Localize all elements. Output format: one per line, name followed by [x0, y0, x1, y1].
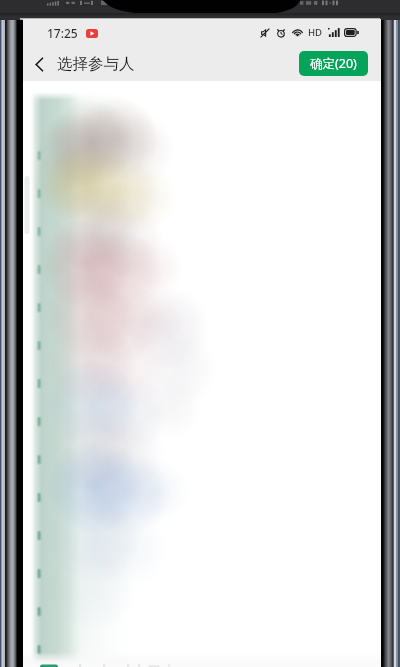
button[interactable] — [23, 593, 381, 631]
button[interactable] — [23, 251, 381, 289]
button[interactable]: 确定(20) — [299, 51, 368, 76]
staticText: HD — [308, 26, 323, 39]
staticText: 17:25 — [47, 25, 78, 41]
button[interactable] — [23, 631, 381, 667]
button[interactable] — [23, 289, 381, 327]
button[interactable] — [23, 175, 381, 213]
button[interactable] — [23, 403, 381, 441]
button[interactable] — [23, 365, 381, 403]
button[interactable] — [23, 137, 381, 175]
staticText: 选择参与人 — [57, 54, 135, 74]
button[interactable] — [23, 479, 381, 517]
button[interactable] — [23, 441, 381, 479]
button[interactable] — [23, 213, 381, 251]
button[interactable] — [23, 517, 381, 555]
staticText: 确定(20) — [310, 55, 357, 72]
button[interactable]: Back — [25, 50, 53, 78]
button[interactable] — [23, 555, 381, 593]
button[interactable] — [23, 327, 381, 365]
